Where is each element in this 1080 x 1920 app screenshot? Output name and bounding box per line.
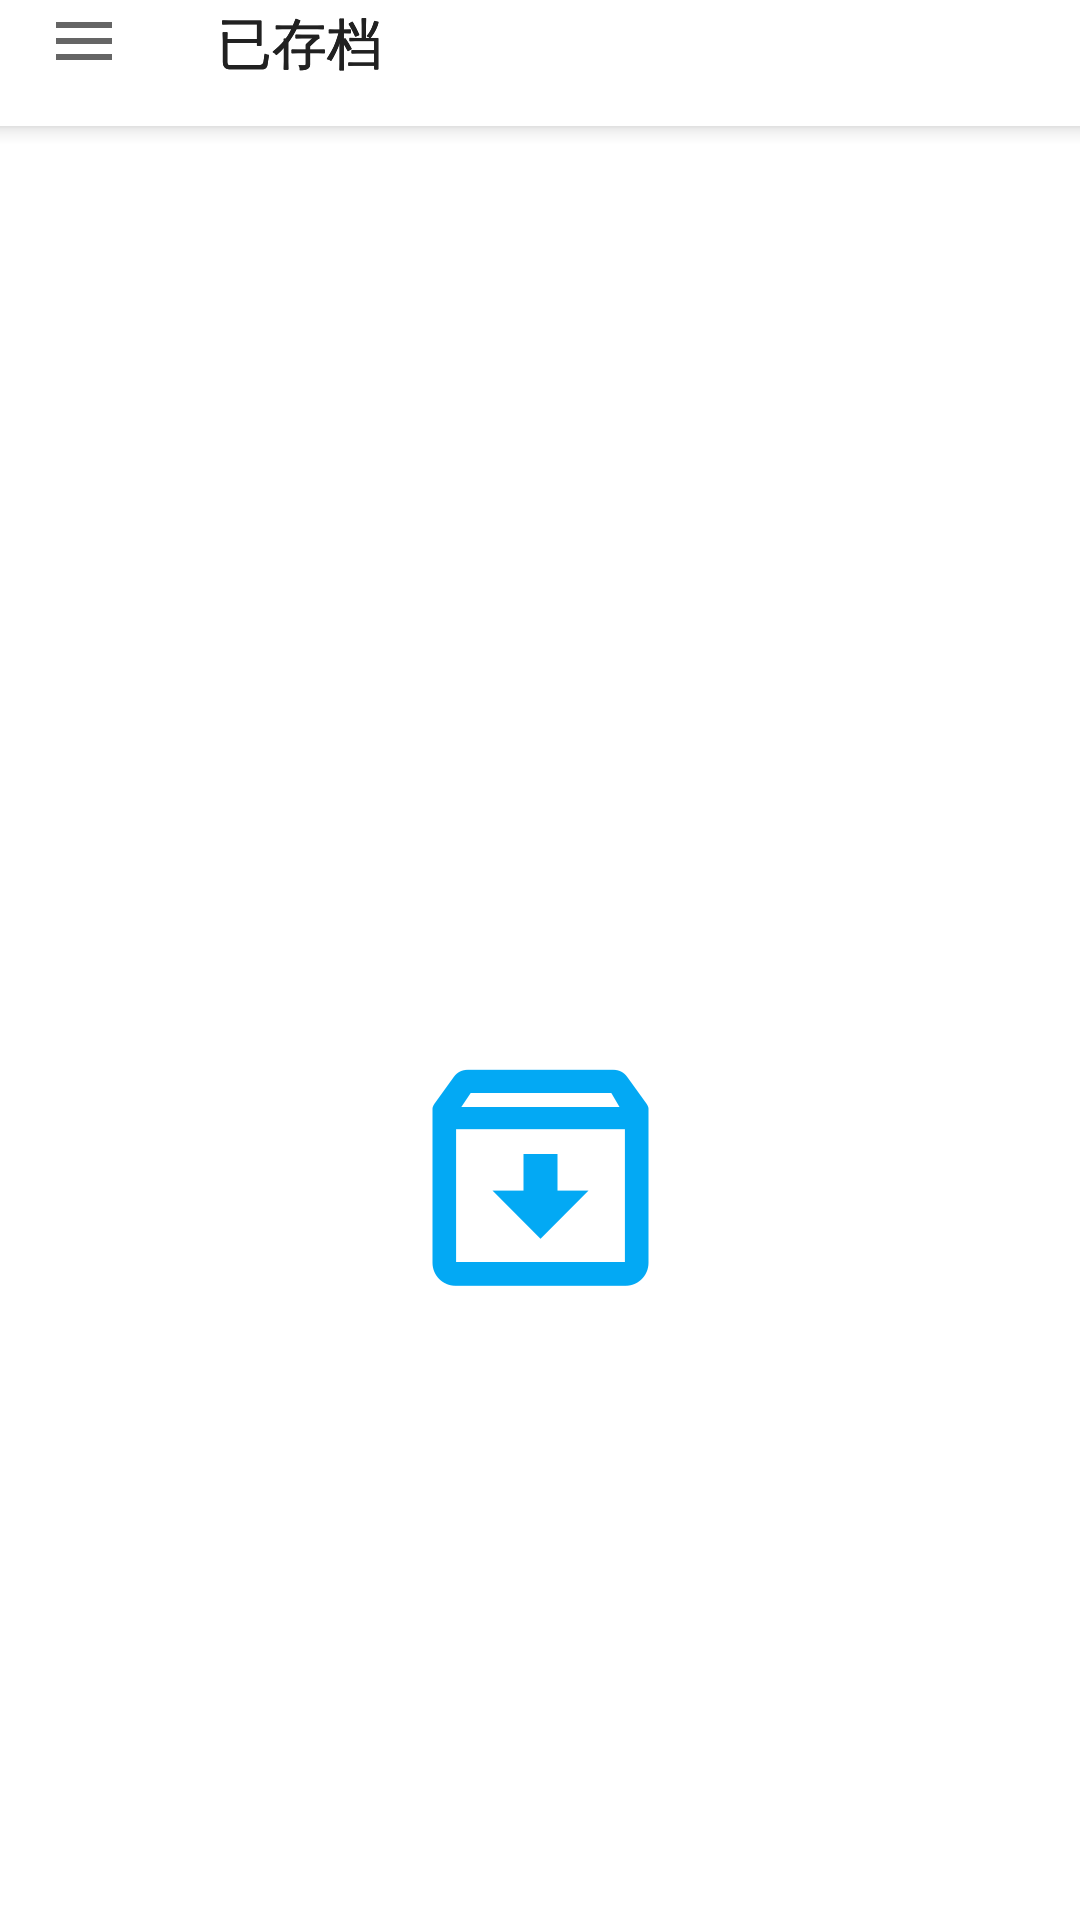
staticText: 已存档 [217,10,382,79]
staticText: 已存档 [217,11,382,79]
staticText: 已存档 [218,11,383,79]
button[interactable]: Menu [42,0,126,83]
staticText: 已存档 [218,10,383,79]
